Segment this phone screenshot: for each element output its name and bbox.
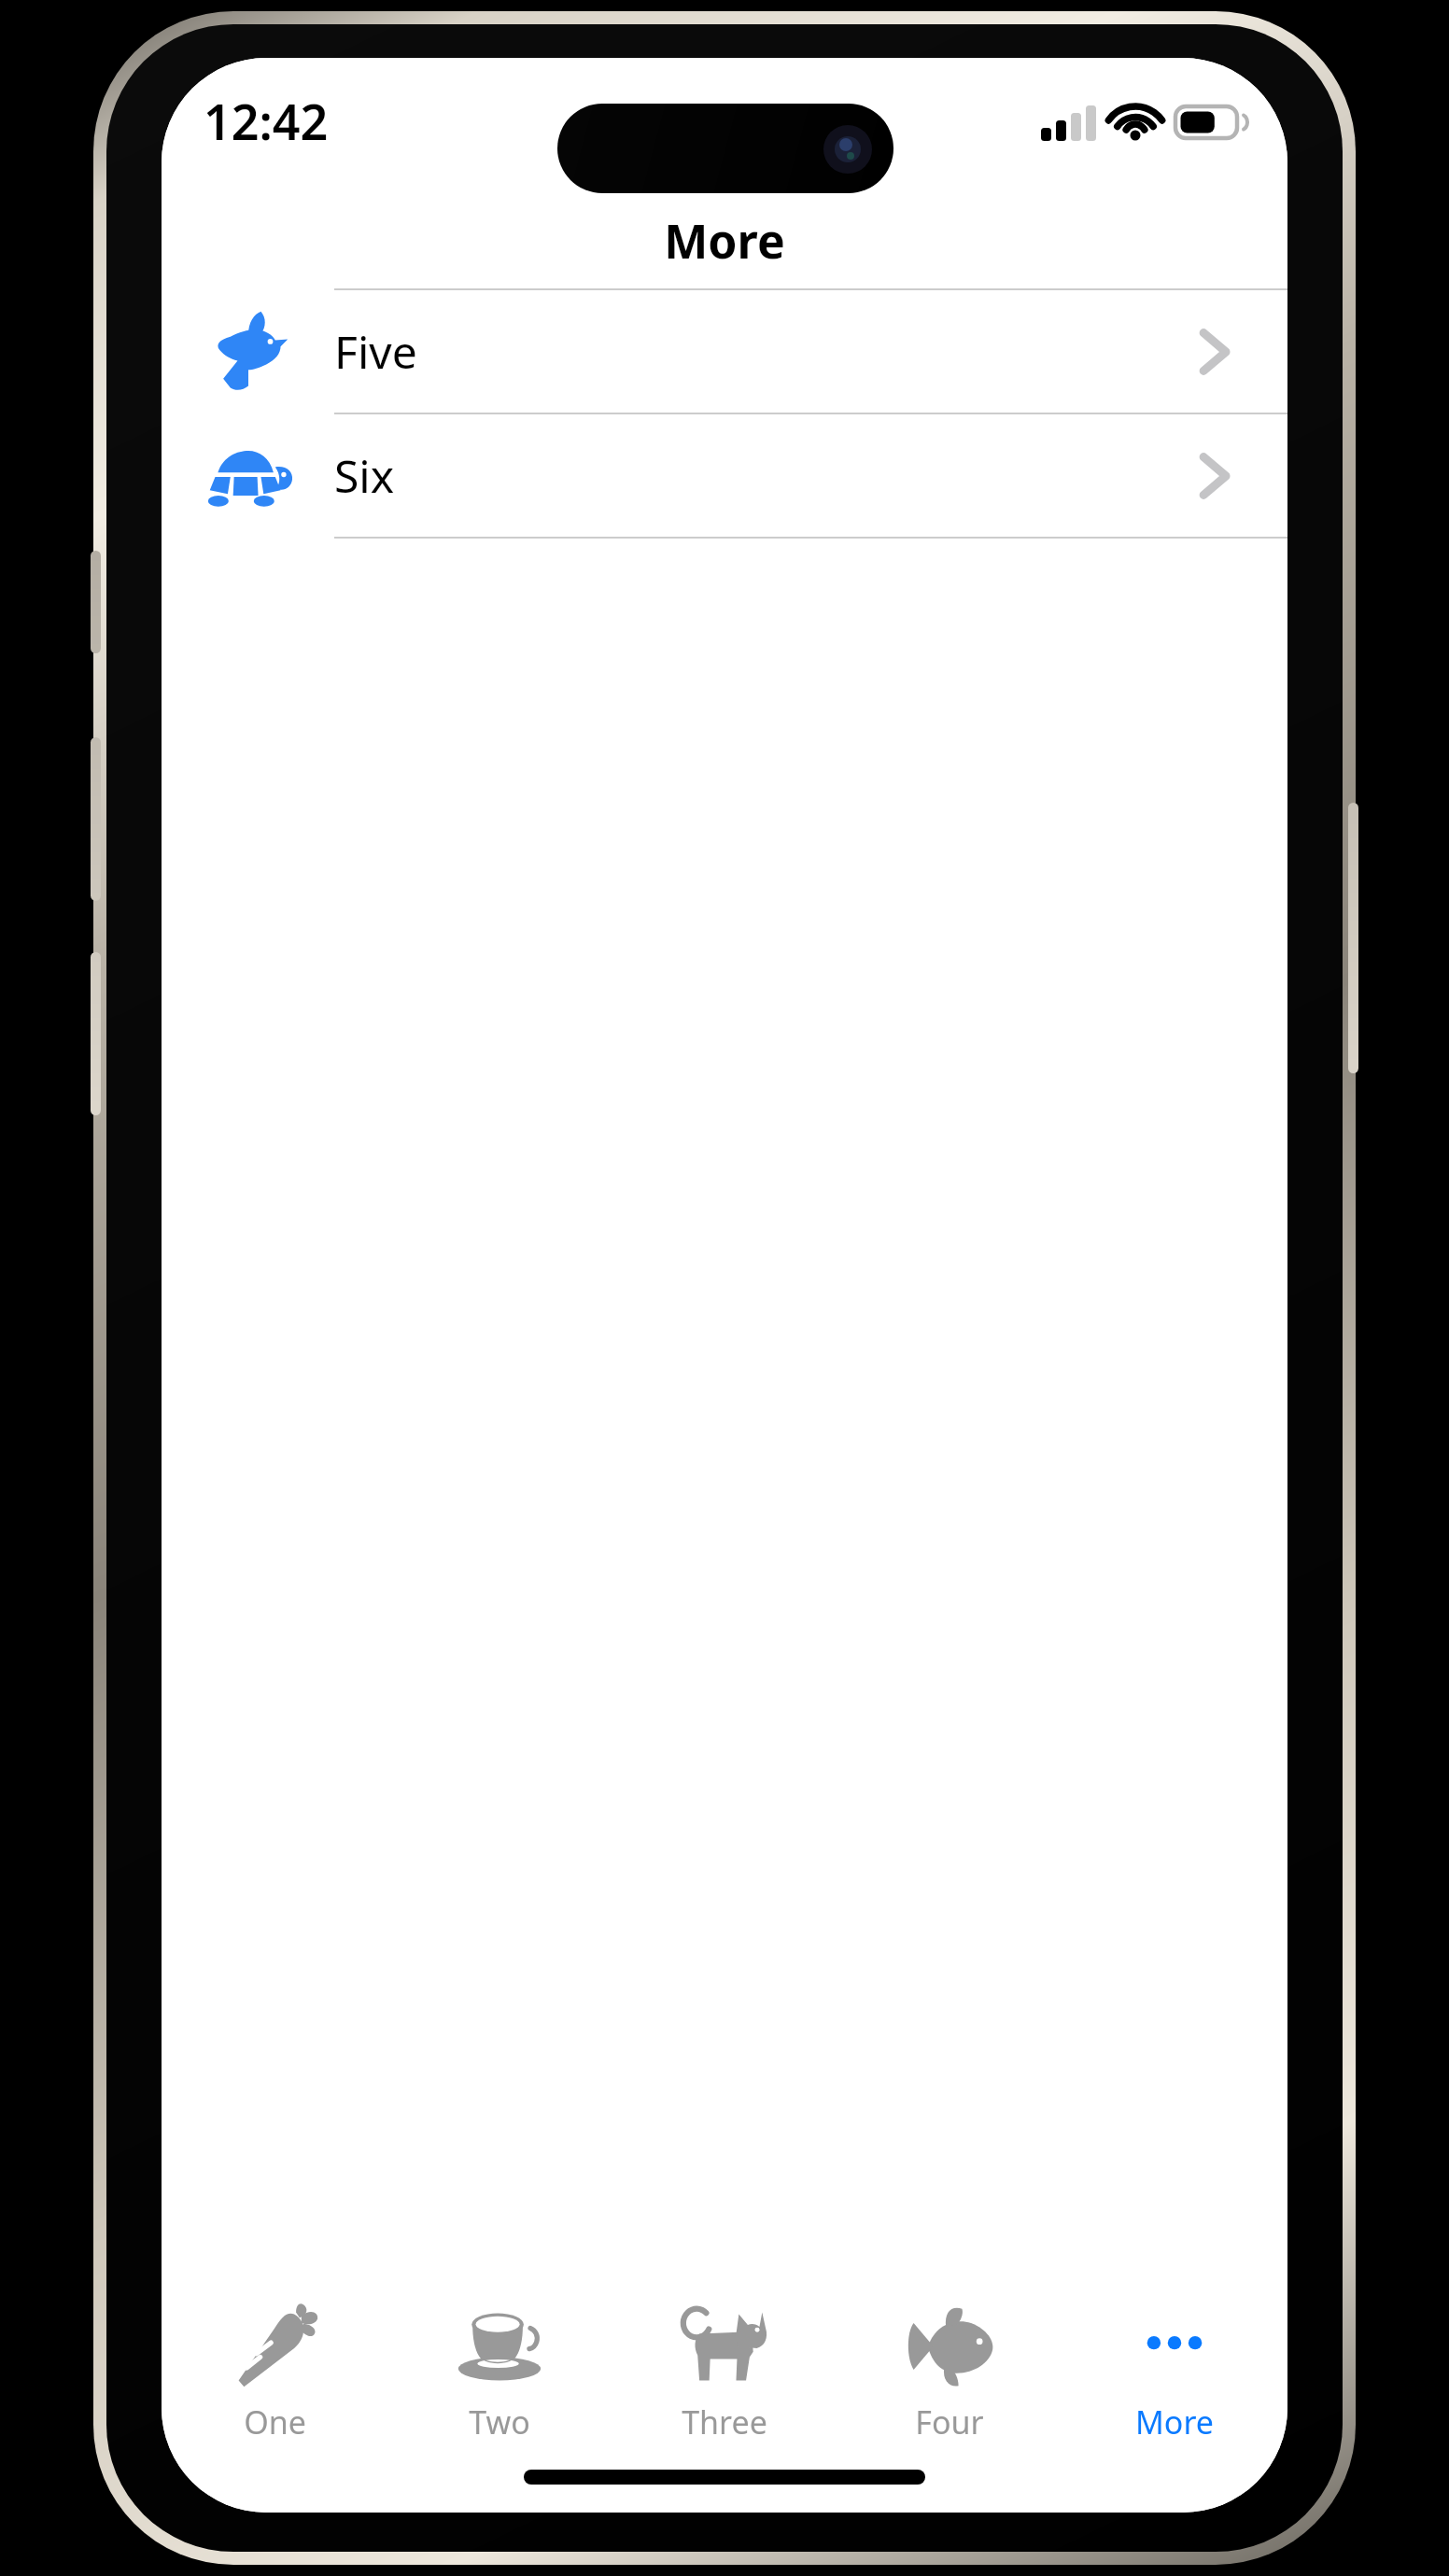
staticText: Five (334, 321, 417, 382)
button[interactable]: One (162, 2294, 387, 2451)
button[interactable]: Four (837, 2294, 1062, 2451)
button[interactable]: Three (612, 2294, 837, 2451)
button[interactable]: Five (162, 290, 1287, 413)
staticText: More (664, 209, 785, 273)
staticText: Four (915, 2401, 984, 2443)
staticText: 12:42 (204, 88, 329, 154)
button[interactable]: Six (162, 414, 1287, 537)
button[interactable]: Two (387, 2294, 612, 2451)
staticText: Six (334, 445, 395, 506)
staticText: More (1135, 2401, 1214, 2443)
staticText: One (244, 2401, 306, 2443)
staticText: Three (682, 2401, 767, 2443)
button[interactable]: More (1062, 2294, 1287, 2451)
staticText: Two (469, 2401, 530, 2443)
